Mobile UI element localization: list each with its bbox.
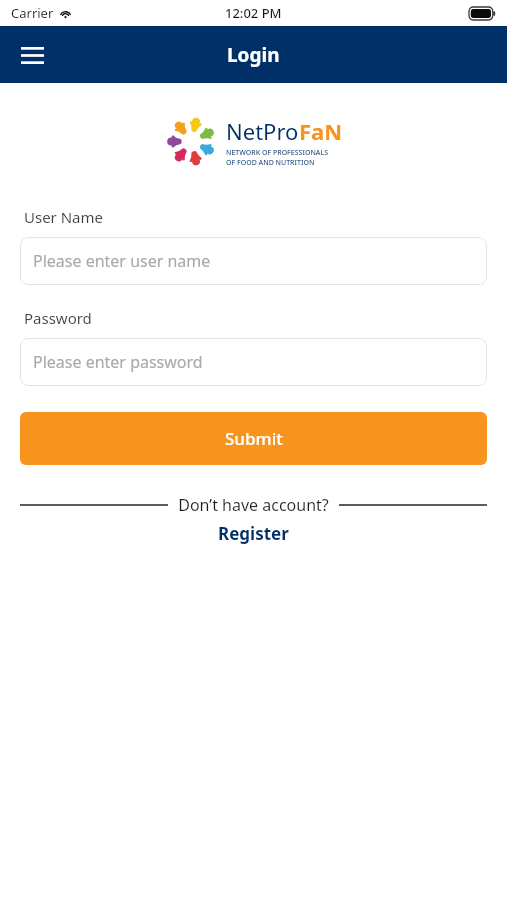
staticText: Login (227, 42, 280, 68)
staticText: Don’t have account? (178, 494, 329, 516)
staticText: User Name (24, 207, 104, 227)
staticText: Please enter password (33, 351, 203, 373)
staticText: Submit (225, 427, 283, 450)
button[interactable]: Submit (20, 412, 487, 465)
button[interactable]: Please enter user name (20, 237, 487, 285)
button[interactable]: Register (210, 520, 297, 547)
button[interactable]: Open navigation menu (12, 35, 52, 75)
staticText: Password (24, 308, 92, 328)
button[interactable]: Please enter password (20, 338, 487, 386)
staticText: OF FOOD AND NUTRITION (226, 158, 315, 168)
staticText: NetPro (226, 116, 299, 146)
staticText: Register (218, 522, 289, 545)
staticText: 12:02 PM (225, 4, 282, 22)
staticText: Please enter user name (33, 250, 211, 272)
staticText: Carrier (11, 4, 54, 22)
staticText: FaN (299, 116, 343, 146)
staticText: NETWORK OF PROFESSIONALS (226, 148, 328, 158)
